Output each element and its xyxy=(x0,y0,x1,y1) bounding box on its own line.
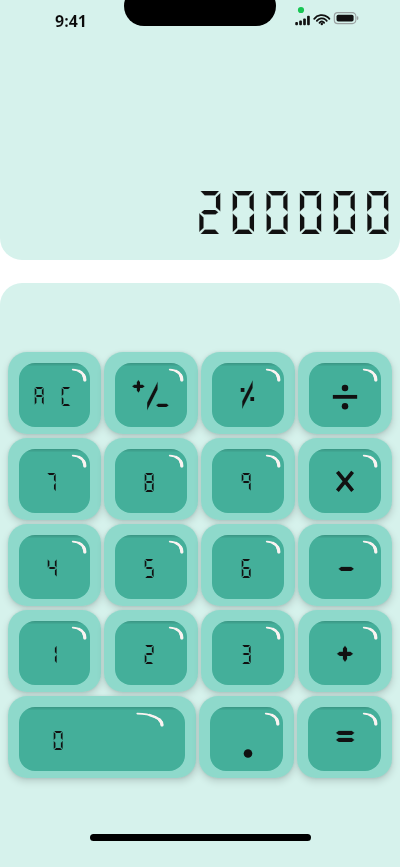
staticText: 9 xyxy=(239,470,254,493)
button[interactable]: 1 xyxy=(8,610,101,692)
staticText: 5 xyxy=(142,556,157,579)
button[interactable]: Decimal point xyxy=(199,696,294,778)
button[interactable]: Divide xyxy=(298,352,392,434)
button[interactable]: 2 xyxy=(104,610,198,692)
staticText: = xyxy=(330,713,361,762)
staticText: % xyxy=(235,375,260,415)
staticText: 3 xyxy=(239,642,254,665)
staticText: 6 xyxy=(239,556,254,579)
staticText: 4 xyxy=(45,556,60,579)
button[interactable]: 8 xyxy=(104,438,198,520)
button[interactable]: Multiply xyxy=(298,438,392,520)
button[interactable]: 9 xyxy=(201,438,295,520)
button[interactable]: Equals xyxy=(297,696,392,778)
button[interactable]: 0 xyxy=(8,696,196,778)
staticText: + xyxy=(329,627,361,679)
staticText: + xyxy=(126,366,151,406)
staticText: - xyxy=(331,543,362,592)
button[interactable]: 3 xyxy=(201,610,295,692)
staticText: 1 xyxy=(45,642,60,665)
staticText: AC xyxy=(32,384,86,407)
staticText: 2 xyxy=(142,642,157,665)
staticText: 0 xyxy=(51,728,66,751)
button[interactable]: Plus xyxy=(298,610,392,692)
staticText: 9:41 xyxy=(55,10,87,32)
staticText: / xyxy=(140,376,165,416)
button[interactable]: 7 xyxy=(8,438,101,520)
staticText: 7 xyxy=(44,470,59,493)
button[interactable]: Toggle sign xyxy=(104,352,198,434)
button[interactable]: Minus xyxy=(298,524,392,606)
staticText: - xyxy=(150,385,175,425)
button[interactable]: Percent xyxy=(201,352,295,434)
button[interactable]: 5 xyxy=(104,524,198,606)
button[interactable]: 6 xyxy=(201,524,295,606)
button[interactable]: AC xyxy=(8,352,101,434)
staticText: 200000 xyxy=(193,184,395,238)
staticText: 8 xyxy=(142,470,157,493)
button[interactable]: 4 xyxy=(8,524,101,606)
